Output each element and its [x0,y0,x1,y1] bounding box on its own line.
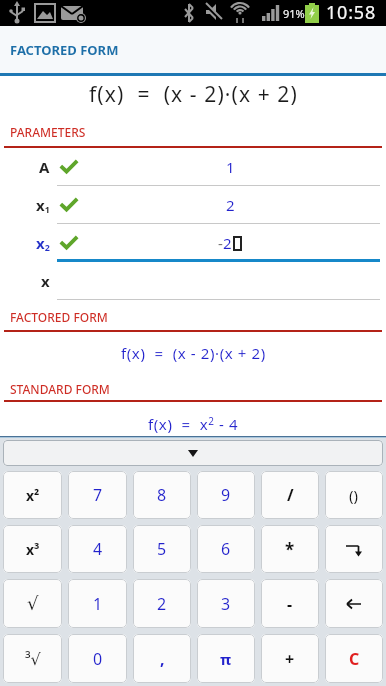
staticText: x [41,271,50,291]
staticText: f(x) = x2 - 4 [148,414,239,434]
staticText: x2 [36,233,50,254]
staticText: x³ [26,540,40,559]
staticText: 9 [221,484,231,506]
button[interactable]: x2 [0,224,386,262]
button[interactable]: + [261,634,319,683]
button[interactable]: / [261,471,319,519]
button[interactable]: FACTORED FORM [0,26,386,73]
staticText: - [287,593,293,615]
staticText: 91% [283,6,305,21]
button[interactable] [325,525,383,573]
button[interactable]: 6 [197,525,255,573]
button[interactable]: - [261,579,319,628]
button[interactable]: x³ [3,525,62,573]
staticText: / [287,484,294,506]
button[interactable]: () [325,471,383,519]
button[interactable]: * [261,525,319,573]
button[interactable]: 4 [68,525,127,573]
staticText: * [285,538,295,561]
staticText: + [285,648,295,670]
button[interactable]: 9 [197,471,255,519]
staticText: 2 [226,195,235,215]
staticText: 6 [221,538,231,560]
button[interactable]: π [197,634,255,683]
staticText: f(x) = (x - 2)·(x + 2) [121,343,266,363]
staticText: 5 [157,538,167,560]
staticText: PARAMETERS [10,124,86,140]
button[interactable]: x [0,262,386,300]
staticText: x² [26,486,40,505]
button[interactable]: 0 [68,634,127,683]
staticText: √ [27,593,39,614]
staticText: 1 [93,593,103,615]
button[interactable]: 2 [133,579,191,628]
button[interactable]: 3 [197,579,255,628]
staticText: 2 [157,593,167,615]
button[interactable] [325,579,383,628]
staticText: () [349,485,359,505]
button[interactable]: x² [3,471,62,519]
button[interactable]: 7 [68,471,127,519]
staticText: 7 [93,484,103,506]
staticText: FACTORED FORM [10,309,108,325]
staticText: ³√ [25,648,41,670]
button[interactable]: 1 [68,579,127,628]
staticText: 10:58 [326,0,377,25]
staticText: - [218,233,223,253]
button[interactable]: , [133,634,191,683]
staticText: , [160,648,165,670]
button[interactable]: 8 [133,471,191,519]
staticText: π [220,649,232,669]
staticText: 1 [226,157,235,177]
button[interactable]: √ [3,579,62,628]
button[interactable]: A [0,148,386,186]
staticText: f(x) = (x - 2)·(x + 2) [89,80,298,109]
button[interactable]: ³√ [3,634,62,683]
staticText: C [349,648,360,670]
staticText: 4 [93,538,103,560]
staticText: 0 [93,648,103,670]
staticText: STANDARD FORM [10,381,110,397]
staticText: FACTORED FORM [10,41,119,59]
button[interactable]: x1 [0,186,386,224]
staticText: A [39,157,50,177]
staticText: 3 [221,593,231,615]
button[interactable]: 5 [133,525,191,573]
button[interactable]: C [325,634,383,683]
staticText: 8 [157,484,167,506]
button[interactable] [3,440,383,466]
staticText: 2 [223,233,232,253]
staticText: x1 [36,195,50,216]
